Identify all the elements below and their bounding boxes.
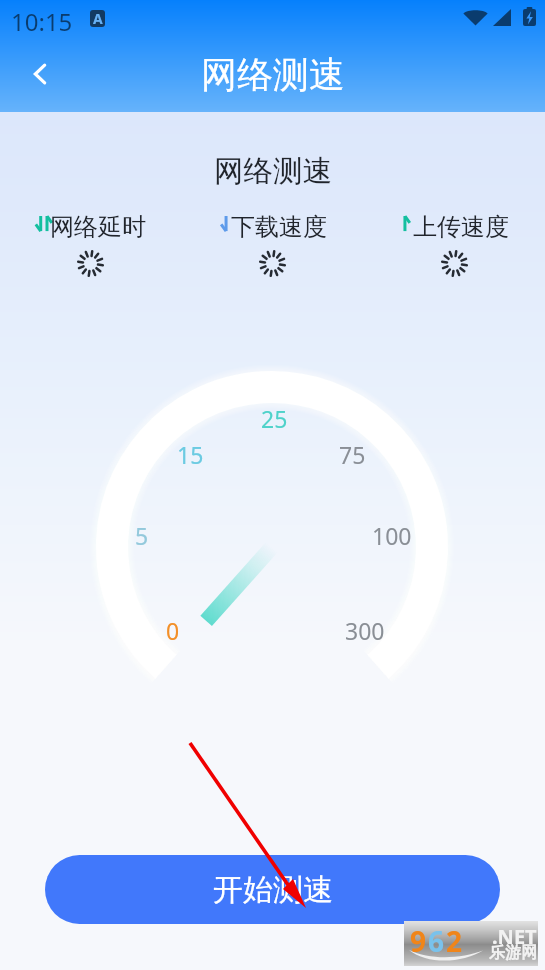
button[interactable]: 开始测速	[45, 855, 500, 924]
staticText: 15	[177, 439, 204, 470]
staticText: 网络测速	[214, 153, 332, 190]
staticText: 9	[410, 922, 428, 960]
staticText: 开始测速	[213, 871, 333, 909]
staticText: 100	[372, 520, 412, 551]
staticText: 网络延时	[50, 212, 146, 242]
staticText: 下载速度	[231, 212, 327, 242]
button[interactable]: 网络延时	[0, 212, 181, 277]
staticText: A	[93, 10, 103, 26]
button[interactable]: Back	[18, 52, 62, 96]
staticText: .NET	[492, 923, 537, 950]
button[interactable]: 上传速度	[363, 212, 545, 277]
staticText: 300	[345, 615, 385, 646]
button[interactable]: 下载速度	[181, 212, 363, 277]
staticText: 网络测速	[201, 52, 345, 97]
staticText: 上传速度	[413, 212, 509, 242]
staticText: 乐游网	[489, 943, 537, 963]
staticText: 10:15	[11, 5, 73, 38]
staticText: 0	[166, 615, 180, 646]
staticText: 5	[135, 520, 149, 551]
staticText: 75	[339, 439, 366, 470]
staticText: 2	[446, 922, 464, 960]
staticText: 25	[261, 403, 288, 434]
staticText: 6	[428, 922, 446, 960]
